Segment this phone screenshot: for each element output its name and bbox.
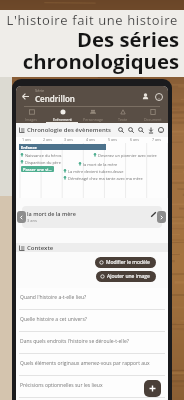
staticText: Déménagé chez ma tante avec ma mère — [68, 176, 143, 181]
staticText: 2 ans — [43, 137, 52, 142]
button[interactable]: Devenez un pionnier avec votre — [93, 152, 157, 158]
button[interactable]: Suivant — [157, 211, 166, 223]
staticText: L'histoire fait une histoire — [0, 11, 178, 29]
button[interactable]: Quand l'histoire a-t-elle lieu? — [16, 288, 168, 310]
button[interactable]: Déménagé chez ma tante avec ma mère — [63, 175, 143, 181]
button[interactable]: Images — [16, 106, 47, 123]
button[interactable]: la mort de la mère — [78, 161, 118, 167]
staticText: Contexte — [27, 244, 54, 252]
button[interactable]: Zoom — [136, 125, 146, 135]
button[interactable]: la mort de la mère — [22, 206, 162, 228]
staticText: Enfance — [21, 145, 37, 150]
button[interactable]: Zoom — [116, 125, 126, 135]
button[interactable]: Retour — [20, 91, 31, 102]
button[interactable]: Naissance du héros — [20, 152, 62, 158]
button[interactable]: Ajouter une image — [96, 271, 156, 282]
button[interactable]: Document — [138, 106, 168, 123]
button[interactable]: Précisions optionnelles sur les lieux — [16, 376, 168, 398]
staticText: Disparition du père — [25, 160, 61, 165]
staticText: 4 ans — [86, 137, 95, 142]
staticText: Cendrillon — [35, 93, 75, 104]
button[interactable]: Ajouter — [144, 380, 161, 397]
staticText: la mort de la mère — [27, 210, 76, 217]
staticText: la mort de la mère — [83, 162, 118, 167]
staticText: Des séries — [0, 25, 179, 53]
button[interactable]: Aide — [156, 125, 166, 135]
button[interactable]: Précédent — [17, 211, 26, 223]
button[interactable]: Dans quels endroits l'histoire se déroul… — [16, 332, 168, 354]
button[interactable]: Télécharger — [146, 125, 156, 135]
staticText: 3 ans — [27, 218, 37, 223]
staticText: 6 ans — [130, 137, 139, 142]
staticText: Naissance du héros — [25, 153, 62, 158]
staticText: 1 ans — [22, 137, 31, 142]
staticText: Evénement — [53, 117, 72, 122]
staticText: Devenez un pionnier avec votre — [98, 153, 157, 158]
staticText: 3 ans — [64, 137, 73, 142]
button[interactable]: Modifier — [149, 210, 157, 218]
staticText: Chronologie des évènements — [27, 126, 112, 134]
button[interactable]: Evénement — [47, 106, 78, 123]
button[interactable]: Texte — [108, 106, 138, 123]
staticText: La mère devient tuberculeuse — [68, 169, 124, 174]
staticText: Précisions optionnelles sur les lieux — [20, 382, 103, 389]
button[interactable]: Personnage — [78, 106, 108, 123]
button[interactable]: Aide — [153, 91, 164, 102]
staticText: Passer une vi... — [23, 167, 52, 172]
staticText: Dans quels endroits l'histoire se déroul… — [20, 338, 129, 345]
staticText: Ajouter une image — [107, 273, 150, 280]
staticText: Quand l'histoire a-t-elle lieu? — [20, 294, 87, 301]
button[interactable]: Quels éléments originaux amenez-vous par… — [16, 354, 168, 376]
button[interactable]: Zoom — [126, 125, 136, 135]
button[interactable]: La mère devient tuberculeuse — [63, 168, 124, 174]
staticText: Personnage — [83, 117, 103, 122]
staticText: Série — [35, 88, 45, 93]
staticText: Quelle histoire a cet univers? — [20, 316, 87, 323]
staticText: Quels éléments originaux amenez-vous par… — [20, 360, 168, 367]
staticText: 5 ans — [108, 137, 117, 142]
button[interactable]: Disparition du père — [20, 159, 61, 165]
staticText: Modifier le modèle — [106, 259, 150, 266]
staticText: Document — [144, 117, 162, 122]
button[interactable]: Modifier le modèle — [95, 257, 156, 268]
button[interactable]: Profil — [140, 91, 151, 102]
staticText: Texte — [118, 117, 128, 122]
button[interactable]: Quelle histoire a cet univers? — [16, 310, 168, 332]
staticText: Images — [25, 117, 38, 122]
staticText: 7 ans — [152, 137, 161, 142]
staticText: chronologiques — [0, 47, 179, 75]
